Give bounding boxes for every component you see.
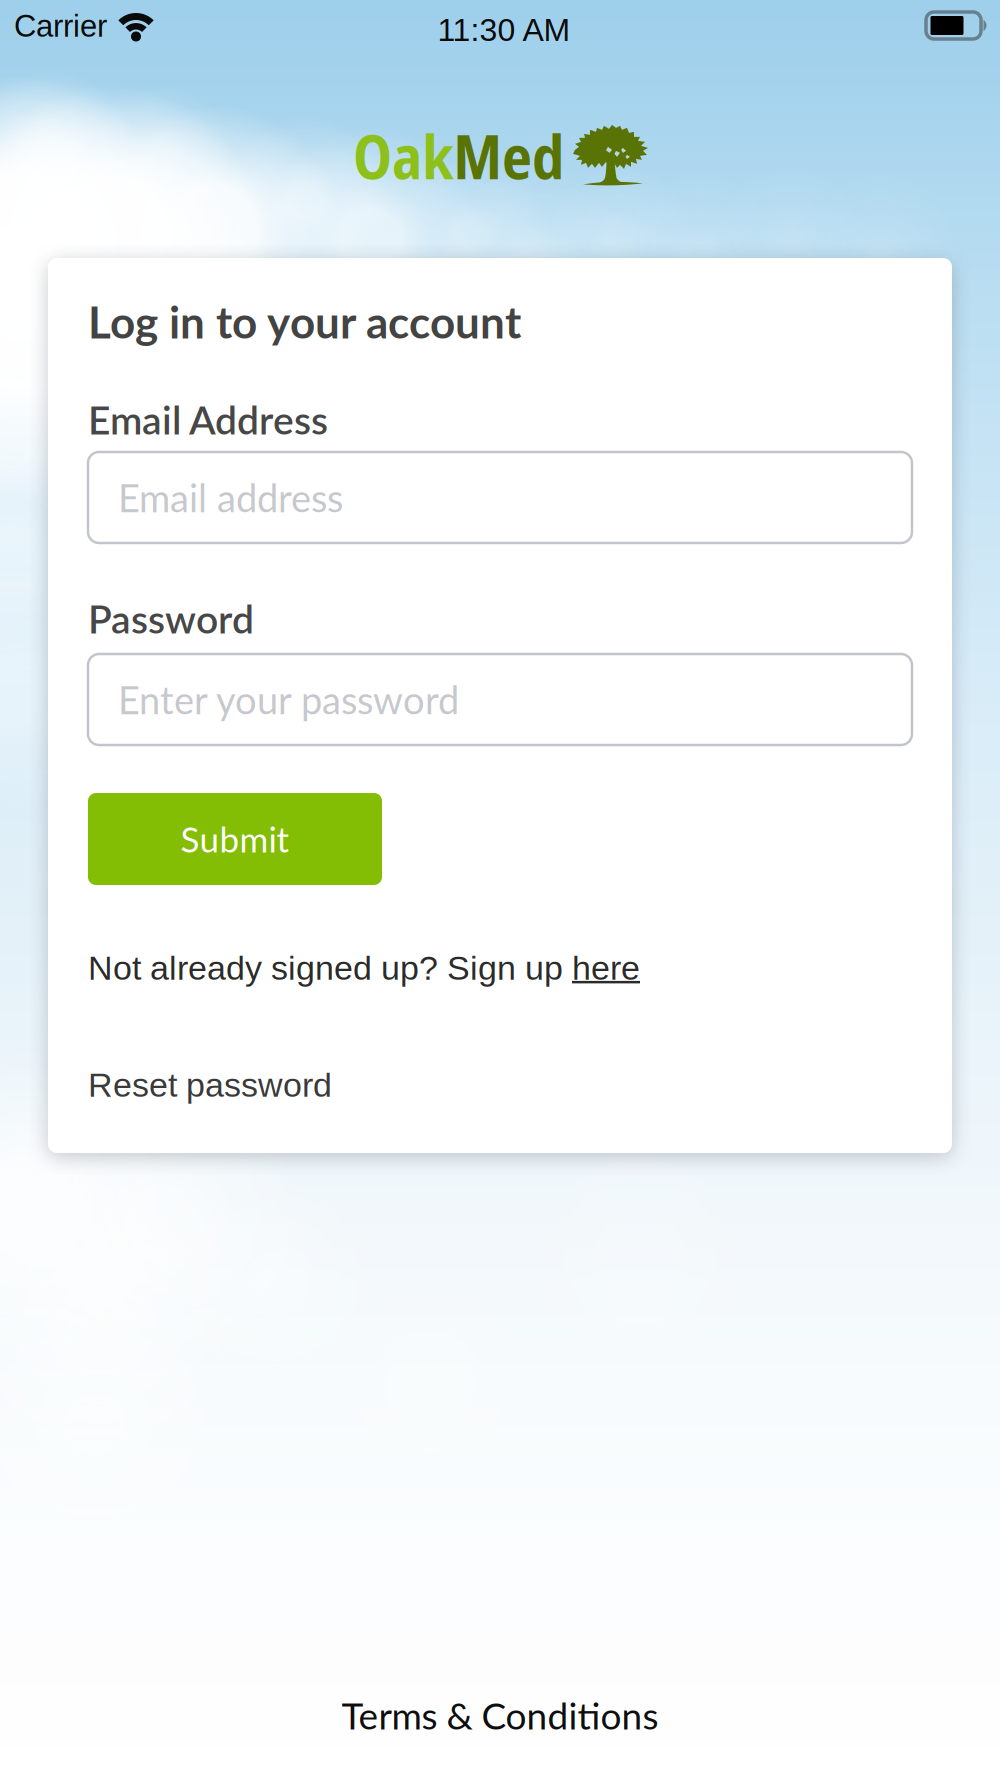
button[interactable]: Not already signed up? Sign up xyxy=(88,949,640,987)
button[interactable]: Reset password xyxy=(88,1066,332,1104)
staticText: Not already signed up? Sign up xyxy=(88,949,572,987)
staticText: Submit xyxy=(180,818,289,860)
staticText: Oak xyxy=(353,115,453,197)
staticText: Email Address xyxy=(88,396,328,443)
staticText: Terms & Conditions xyxy=(341,1693,658,1737)
staticText: Carrier xyxy=(14,9,107,43)
staticText: 11:30 AM xyxy=(437,12,570,48)
staticText: Med xyxy=(453,115,564,197)
staticText: Password xyxy=(88,595,254,642)
staticText: Email address xyxy=(118,475,343,520)
button[interactable]: Terms & Conditions xyxy=(0,1693,1000,1737)
staticText: here xyxy=(572,949,640,987)
staticText: Reset password xyxy=(88,1066,332,1104)
button[interactable]: Submit xyxy=(88,793,382,885)
staticText: Enter your password xyxy=(118,677,459,722)
staticText: Log in to your account xyxy=(88,295,521,348)
